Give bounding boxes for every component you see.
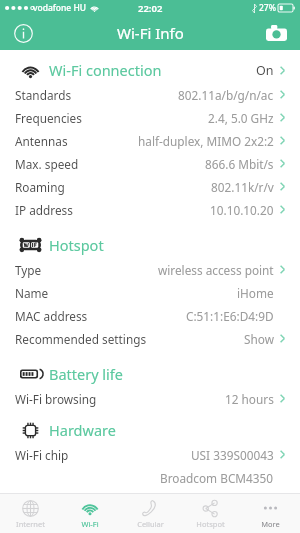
button[interactable]: Wi-Fi xyxy=(60,494,120,533)
button[interactable]: Roaming xyxy=(15,175,285,198)
staticText: iHome xyxy=(237,285,274,301)
button[interactable]: Camera xyxy=(261,18,291,48)
button[interactable]: Wi-Fi browsing xyxy=(15,387,285,410)
staticText: Internet xyxy=(16,519,45,529)
staticText: wireless access point xyxy=(158,262,274,278)
button[interactable]: More xyxy=(240,494,300,533)
staticText: half-duplex, MIMO 2x2:2 xyxy=(138,133,274,149)
staticText: Wi-Fi chip xyxy=(15,447,69,463)
button[interactable]: Recommended settings xyxy=(15,327,285,350)
staticText: 802.11k/r/v xyxy=(211,179,274,195)
button[interactable]: Hotspot xyxy=(15,232,285,258)
button[interactable]: Hardware xyxy=(15,417,285,443)
button[interactable]: Battery life xyxy=(15,361,285,387)
staticText: 2.4, 5.0 GHz xyxy=(208,110,274,126)
button[interactable]: Cellular xyxy=(120,494,180,533)
staticText: 22:02 xyxy=(138,2,163,15)
button[interactable]: Max. speed xyxy=(15,152,285,175)
staticText: Name xyxy=(15,285,49,301)
button[interactable]: Wi-Fi connection xyxy=(15,57,285,83)
button[interactable]: Standards xyxy=(15,83,285,106)
button[interactable]: MAC address xyxy=(15,304,285,327)
staticText: C:51:1:E6:D4:9D xyxy=(186,308,274,324)
staticText: MAC address xyxy=(15,308,88,324)
staticText: 866.6 Mbit/s xyxy=(205,156,274,172)
staticText: Wi-Fi browsing xyxy=(15,391,97,407)
button[interactable]: Wi-Fi chip xyxy=(15,443,285,466)
staticText: Max. speed xyxy=(15,156,79,172)
staticText: 10.10.10.20 xyxy=(210,202,274,218)
staticText: vodafone HU xyxy=(33,2,87,14)
staticText: USI 339S00043 xyxy=(191,447,274,463)
staticText: Wi-Fi Info xyxy=(117,23,184,43)
staticText: Hotspot xyxy=(49,235,104,255)
staticText: Show xyxy=(244,331,274,347)
staticText: Standards xyxy=(15,87,72,103)
staticText: Frequencies xyxy=(15,110,82,126)
button[interactable]: Antennas xyxy=(15,129,285,152)
staticText: Wi-Fi connection xyxy=(49,60,162,80)
staticText: Antennas xyxy=(15,133,68,149)
button[interactable]: Frequencies xyxy=(15,106,285,129)
staticText: Cellular xyxy=(137,519,164,529)
staticText: Broadcom BCM4350 xyxy=(160,470,274,486)
button[interactable]: Broadcom BCM4350 xyxy=(15,466,285,489)
staticText: Battery life xyxy=(49,364,124,384)
staticText: Roaming xyxy=(15,179,65,195)
staticText: 802.11a/b/g/n/ac xyxy=(178,87,274,103)
button[interactable]: Info xyxy=(10,20,36,46)
staticText: 12 hours xyxy=(225,391,274,407)
staticText: Hotspot xyxy=(196,519,225,529)
button[interactable]: Type xyxy=(15,258,285,281)
staticText: Type xyxy=(15,262,42,278)
staticText: Recommended settings xyxy=(15,331,147,347)
button[interactable]: Name xyxy=(15,281,285,304)
staticText: Hardware xyxy=(49,420,116,440)
button[interactable]: Hotspot xyxy=(180,494,240,533)
staticText: More xyxy=(261,519,280,529)
staticText: IP address xyxy=(15,202,73,218)
button[interactable]: IP address xyxy=(15,198,285,221)
staticText: Wi-Fi xyxy=(81,519,99,529)
staticText: 27% xyxy=(259,2,276,14)
staticText: On xyxy=(256,62,274,79)
button[interactable]: Internet xyxy=(0,494,60,533)
